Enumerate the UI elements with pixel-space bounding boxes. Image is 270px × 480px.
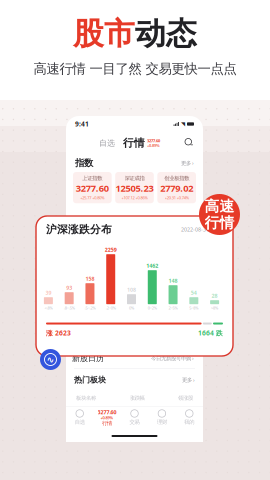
- staticText: 热门板块: [74, 375, 106, 385]
- staticText: 我的: [184, 419, 194, 425]
- button[interactable]: 3277.60: [93, 408, 121, 426]
- button[interactable]: 理财: [148, 410, 176, 425]
- staticText: 158: [85, 275, 94, 282]
- button[interactable]: 高速: [199, 194, 240, 235]
- staticText: +107.12 +0.86%: [121, 195, 147, 200]
- button[interactable]: 自选: [66, 410, 93, 425]
- staticText: 1664 跌: [198, 328, 223, 337]
- staticText: 3277.60: [147, 138, 160, 143]
- staticText: 行情: [204, 214, 234, 232]
- staticText: ◥: [181, 121, 185, 127]
- staticText: 自选: [99, 138, 115, 148]
- staticText: +25.77 +0.80%: [80, 195, 104, 200]
- staticText: 2779.02: [160, 182, 193, 194]
- staticText: 深证成指: [124, 175, 144, 182]
- staticText: 板块名称: [76, 395, 96, 401]
- button[interactable]: 我的: [176, 410, 203, 425]
- button[interactable]: 新股日历: [66, 348, 203, 368]
- staticText: 高速行情 一目了然 交易更快一点点: [33, 61, 236, 77]
- staticText: ∿: [46, 354, 54, 365]
- staticText: 交易: [129, 419, 139, 425]
- staticText: 指数: [75, 157, 93, 169]
- staticText: -8~-5%: [64, 305, 75, 310]
- staticText: 3277.60: [98, 408, 117, 416]
- staticText: -2~0%: [106, 305, 116, 310]
- staticText: 93: [66, 284, 72, 291]
- button[interactable]: 更多 ›: [182, 376, 195, 383]
- staticText: 12505.23: [115, 182, 153, 194]
- staticText: 股市: [73, 15, 135, 53]
- staticText: 39: [45, 289, 51, 296]
- staticText: 动态: [135, 15, 197, 53]
- button[interactable]: 更多 ›: [181, 159, 194, 167]
- staticText: 更多 ›: [181, 159, 194, 167]
- staticText: 创业板指数: [164, 175, 189, 182]
- staticText: -5~-2%: [84, 305, 95, 310]
- staticText: 1462: [146, 262, 158, 269]
- button[interactable]: Search: [185, 138, 194, 147]
- staticText: 涨 2623: [46, 328, 71, 337]
- button[interactable]: 行情: [123, 136, 145, 149]
- staticText: <-8%: [44, 305, 52, 310]
- staticText: 理财: [157, 419, 167, 425]
- staticText: 涨跌幅: [129, 395, 144, 401]
- staticText: +0.89%: [147, 143, 160, 148]
- staticText: 沪深涨跌分布: [46, 223, 112, 236]
- staticText: 0~2%: [148, 305, 157, 310]
- staticText: 0%: [129, 305, 134, 310]
- button[interactable]: 交易: [121, 410, 148, 425]
- staticText: 自选: [75, 419, 85, 425]
- staticText: 2~5%: [169, 305, 178, 310]
- staticText: 今日无新股可申购 ›: [151, 355, 194, 362]
- staticText: 28: [212, 292, 218, 299]
- staticText: 行情: [123, 136, 145, 149]
- staticText: +20.31 +0.74%: [165, 195, 189, 200]
- staticText: 新股日历: [72, 353, 104, 363]
- staticText: 3277.60: [76, 182, 109, 194]
- staticText: 领涨股: [178, 395, 193, 401]
- staticText: 108: [127, 286, 136, 293]
- staticText: 2022-08-31 15:00: [181, 226, 223, 233]
- staticText: 148: [169, 277, 178, 284]
- button[interactable]: 深证成指: [115, 172, 154, 203]
- staticText: 54: [191, 289, 197, 296]
- staticText: 9:41: [75, 120, 89, 128]
- staticText: 行情: [102, 420, 112, 426]
- button[interactable]: 上证指数: [73, 172, 112, 203]
- button[interactable]: 自选: [99, 138, 115, 148]
- staticText: 更多 ›: [182, 376, 195, 383]
- staticText: 上证指数: [82, 175, 102, 182]
- button[interactable]: 创业板指数: [157, 172, 196, 203]
- staticText: 5~8%: [189, 305, 198, 310]
- staticText: 高速: [204, 197, 234, 215]
- staticText: >8%: [211, 305, 218, 310]
- staticText: 2259: [105, 246, 117, 253]
- staticText: +0.89%: [101, 415, 114, 420]
